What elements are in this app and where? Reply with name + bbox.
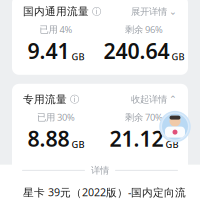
staticText: 剩余 70% [125, 111, 163, 123]
staticText: 9.41 [27, 36, 69, 65]
staticText: 国内通用流量 [23, 5, 89, 18]
staticText: 已用 30% [37, 111, 75, 123]
staticText: ⌃ [169, 94, 177, 105]
staticText: ⓘ [89, 6, 101, 17]
staticText: GB [71, 50, 84, 63]
button[interactable]: Customer service [158, 110, 192, 144]
staticText: 8.88 [27, 124, 69, 153]
staticText: 已用 4% [39, 23, 72, 35]
staticText: 展开详情 [131, 6, 167, 17]
staticText: 21.12 [109, 124, 163, 153]
staticText: 专用流量 [23, 93, 67, 106]
staticText: 240.64 [103, 36, 169, 65]
staticText: GB [171, 50, 184, 63]
staticText: 星卡 39元（2022版）-国内定向流量 [23, 185, 186, 200]
staticText: GB [71, 138, 84, 151]
button[interactable]: 展开详情 [131, 6, 177, 17]
staticText: ⌄ [169, 6, 177, 17]
staticText: 剩余 96% [125, 23, 163, 35]
staticText: GB [165, 138, 178, 151]
staticText: 收起详情 [131, 94, 167, 105]
button[interactable]: 收起详情 [131, 94, 177, 105]
staticText: ⓘ [67, 94, 79, 105]
staticText: 详情 [91, 165, 109, 176]
